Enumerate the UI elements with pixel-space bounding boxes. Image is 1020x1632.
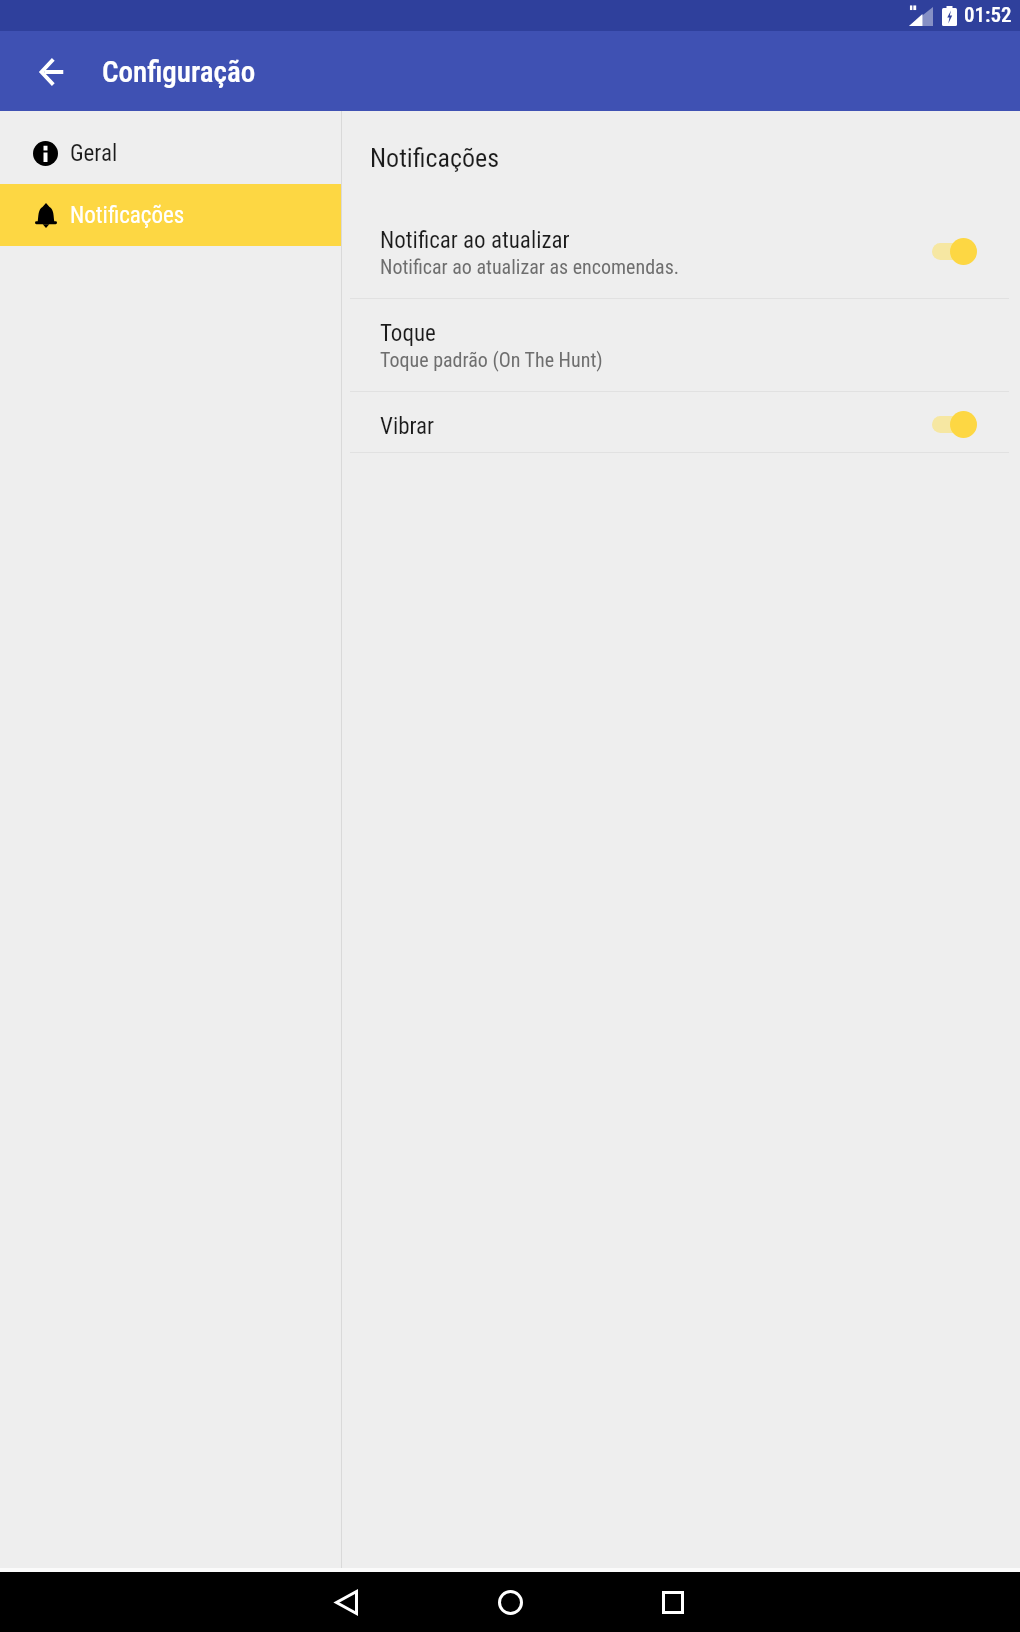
staticText: Toque padrão (On The Hunt) (380, 348, 603, 371)
button[interactable]: Recent apps (643, 1572, 703, 1632)
staticText: Vibrar (380, 413, 435, 440)
button[interactable]: Home (480, 1572, 540, 1632)
button[interactable]: Navigate up (26, 46, 78, 98)
staticText: Toque (380, 320, 436, 347)
button[interactable]: Toggle setting (931, 238, 977, 265)
button[interactable]: Back (316, 1572, 376, 1632)
staticText: 01:52 (964, 3, 1012, 28)
button[interactable]: Toque (342, 299, 1020, 391)
staticText: Geral (70, 140, 118, 167)
staticText: Notificações (370, 143, 500, 173)
staticText: Notificar ao atualizar as encomendas. (380, 255, 680, 278)
button[interactable]: Vibrar (342, 392, 1020, 452)
button[interactable]: Geral (0, 122, 341, 184)
button[interactable]: Toggle setting (931, 411, 977, 438)
staticText: Configuração (102, 55, 256, 89)
staticText: Notificações (70, 202, 185, 229)
staticText: Notificar ao atualizar (380, 227, 570, 254)
button[interactable]: Notificações (0, 184, 341, 246)
button[interactable]: Notificar ao atualizar (342, 205, 1020, 298)
